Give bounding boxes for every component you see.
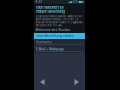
staticText: Jetzt Bestellung starten [36, 34, 74, 38]
button[interactable]: E-Mail / Webpage [34, 46, 85, 53]
button[interactable]: Previous [36, 75, 48, 89]
staticText: E-Mail / Webpage [36, 47, 64, 51]
button[interactable]: Username [34, 39, 85, 46]
button[interactable]: Jetzt Bestellung starten [34, 33, 85, 39]
staticText: LTE [73, 0, 78, 4]
staticText: Einige kleine Feature-Wünsche, andere di… [36, 15, 83, 27]
staticText: Informationen für Industrialisierung [36, 5, 65, 14]
staticText: 9:41 [35, 0, 41, 4]
staticText: Webseite des Kunden [36, 28, 71, 32]
staticText: Username [36, 40, 52, 44]
button[interactable]: Next [71, 75, 82, 89]
